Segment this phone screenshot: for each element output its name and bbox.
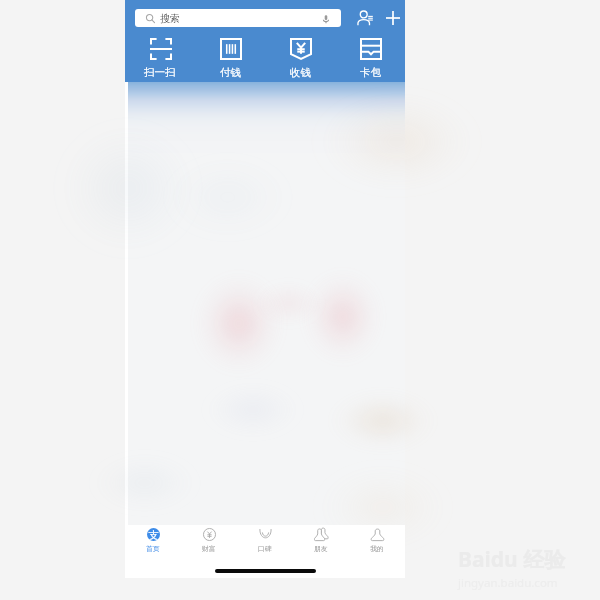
staticText: 卡包 bbox=[360, 66, 381, 79]
button[interactable]: 收钱 bbox=[265, 37, 335, 79]
button[interactable]: 扫一扫 bbox=[125, 37, 195, 79]
button[interactable]: 财富 bbox=[181, 528, 237, 553]
staticText: 收钱 bbox=[290, 66, 311, 79]
staticText: 扫一扫 bbox=[144, 66, 176, 79]
staticText: 财富 bbox=[202, 544, 216, 553]
staticText: 口碑 bbox=[258, 544, 272, 553]
staticText: 付钱 bbox=[220, 66, 241, 79]
staticText: 支 bbox=[148, 528, 159, 541]
staticText: 首页 bbox=[146, 544, 160, 553]
staticText: 我的 bbox=[370, 544, 384, 553]
button[interactable]: 支 bbox=[125, 528, 181, 553]
button[interactable]: Contacts bbox=[354, 7, 376, 29]
button[interactable]: 搜索 bbox=[135, 9, 341, 27]
button[interactable]: 我的 bbox=[349, 528, 405, 553]
button[interactable]: 卡包 bbox=[335, 37, 405, 79]
button[interactable]: 口碑 bbox=[237, 528, 293, 553]
staticText: 朋友 bbox=[314, 544, 328, 553]
staticText: 搜索 bbox=[160, 12, 180, 25]
staticText: Baidu 经验 bbox=[458, 545, 566, 574]
button[interactable]: 付钱 bbox=[195, 37, 265, 79]
button[interactable]: 朋友 bbox=[293, 528, 349, 553]
button[interactable]: Add bbox=[382, 7, 404, 29]
